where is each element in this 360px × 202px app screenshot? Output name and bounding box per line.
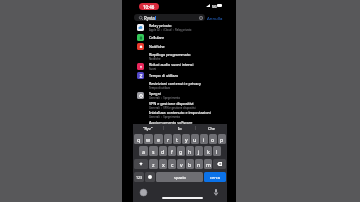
button[interactable]: Aggiornamento software — [133, 119, 227, 129]
staticText: Riepilogo programmato — [149, 52, 191, 57]
button[interactable]: Cellulare — [133, 32, 227, 42]
button[interactable]: a — [139, 146, 148, 156]
staticText: 123 — [136, 175, 143, 180]
staticText: i — [203, 136, 205, 143]
staticText: x — [162, 161, 165, 168]
staticText: Ryvia — [144, 15, 155, 21]
staticText: Restrizioni contenuti e privacy — [149, 81, 201, 86]
button[interactable]: l — [213, 146, 221, 156]
staticText: y — [185, 136, 188, 143]
staticText: Aggiornamento software — [149, 120, 193, 125]
button[interactable]: f — [168, 146, 176, 156]
staticText: f — [171, 148, 173, 155]
staticText: 5G — [212, 4, 217, 9]
button[interactable]: h — [186, 146, 194, 156]
button[interactable]: Riepilogo programmato — [133, 51, 227, 61]
button[interactable]: Annulla — [207, 14, 223, 21]
button[interactable]: 123 — [134, 172, 144, 182]
button[interactable]: t — [173, 134, 181, 144]
button[interactable]: Che — [196, 124, 227, 132]
button[interactable]: j — [195, 146, 203, 156]
staticText: s — [152, 148, 155, 155]
button[interactable]: Cancella — [213, 159, 226, 169]
button[interactable]: Notifiche — [133, 41, 227, 51]
staticText: q — [137, 136, 141, 143]
button[interactable]: n — [195, 159, 203, 169]
button[interactable]: Ryvia — [134, 14, 205, 21]
button[interactable]: cerca — [204, 172, 226, 182]
staticText: w — [146, 136, 151, 143]
staticText: “Ryv” — [143, 126, 153, 131]
staticText: cerca — [210, 175, 220, 180]
staticText: Che — [208, 126, 216, 131]
staticText: spazio — [174, 175, 186, 180]
button[interactable]: v — [177, 159, 185, 169]
button[interactable]: p — [218, 134, 226, 144]
button[interactable]: o — [209, 134, 217, 144]
button[interactable]: m — [204, 159, 212, 169]
button[interactable]: Dettatura — [214, 189, 218, 196]
staticText: Suoni — [149, 67, 157, 71]
button[interactable]: spazio — [156, 172, 203, 182]
staticText: c — [171, 161, 174, 168]
staticText: u — [193, 136, 197, 143]
staticText: r — [167, 136, 170, 143]
button[interactable]: w — [144, 134, 153, 144]
staticText: Io — [178, 126, 182, 131]
staticText: 10:46 — [143, 4, 155, 10]
button[interactable]: Inizializza contenuto e impostazioni — [133, 109, 227, 119]
staticText: l — [216, 148, 218, 155]
staticText: Inizializza contenuto e impostazioni — [149, 110, 211, 115]
button[interactable]: VPN e gestione dispositivi — [133, 100, 227, 110]
staticText: Spegni — [149, 91, 161, 96]
button[interactable]: Io — [164, 124, 195, 132]
staticText: Tempo di utilizzo — [149, 86, 171, 90]
staticText: m — [206, 161, 211, 168]
staticText: g — [179, 148, 183, 155]
button[interactable]: r — [164, 134, 172, 144]
staticText: d — [161, 148, 165, 155]
staticText: Annulla — [207, 15, 223, 21]
staticText: Notifiche — [149, 44, 165, 49]
button[interactable]: Riduci audio suoni intensi — [133, 61, 227, 71]
button[interactable]: “Ryv” — [133, 124, 163, 132]
button[interactable]: q — [134, 134, 143, 144]
staticText: Generali › Spegnimento — [149, 115, 181, 119]
staticText: t — [176, 136, 178, 143]
button[interactable]: k — [204, 146, 212, 156]
staticText: v — [180, 161, 183, 168]
button[interactable]: Spegni — [133, 90, 227, 100]
button[interactable]: Maiuscole — [134, 159, 148, 169]
staticText: Generali › Spegnimento — [149, 96, 181, 100]
button[interactable]: c — [168, 159, 176, 169]
staticText: k — [207, 148, 210, 155]
staticText: Tempo di utilizzo — [149, 73, 179, 78]
button[interactable]: b — [186, 159, 194, 169]
staticText: Notifiche — [149, 57, 161, 61]
button[interactable]: Emoji — [145, 172, 155, 182]
button[interactable]: e — [154, 134, 163, 144]
staticText: o — [211, 136, 215, 143]
button[interactable]: d — [159, 146, 167, 156]
button[interactable]: z — [149, 159, 158, 169]
button[interactable]: x — [159, 159, 167, 169]
staticText: Apple ID › iCloud › Relay privato — [149, 28, 192, 32]
staticText: Generali — [149, 125, 160, 129]
staticText: Relay privato — [149, 23, 172, 28]
staticText: Cellulare — [149, 35, 165, 40]
button[interactable]: u — [191, 134, 199, 144]
button[interactable]: Relay privato — [133, 22, 227, 32]
button[interactable]: i — [200, 134, 208, 144]
staticText: p — [220, 136, 224, 143]
button[interactable]: s — [149, 146, 158, 156]
button[interactable]: Tempo di utilizzo — [133, 70, 227, 80]
staticText: e — [157, 136, 160, 143]
staticText: a — [142, 148, 145, 155]
staticText: Generali › VPN e gestione dispositivi — [149, 106, 196, 110]
button[interactable]: y — [182, 134, 190, 144]
button[interactable]: Cambia lingua — [140, 189, 147, 196]
button[interactable]: Restrizioni contenuti e privacy — [133, 80, 227, 90]
button[interactable]: g — [177, 146, 185, 156]
staticText: b — [188, 161, 192, 168]
staticText: VPN e gestione dispositivi — [149, 101, 194, 106]
